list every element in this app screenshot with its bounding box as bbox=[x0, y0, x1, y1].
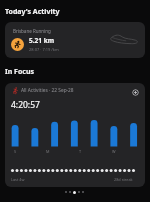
staticText: 5.21 km bbox=[29, 36, 55, 45]
staticText: 28:07 · 7:19 /km bbox=[29, 47, 59, 52]
staticText: 28d streak bbox=[114, 177, 133, 182]
staticText: S bbox=[14, 149, 17, 154]
staticText: M bbox=[46, 149, 50, 154]
staticText: W bbox=[112, 149, 116, 154]
button[interactable]: Add activity bbox=[132, 89, 139, 96]
staticText: Today's Activity bbox=[5, 7, 60, 17]
staticText: T bbox=[79, 149, 82, 154]
staticText: Brisbane Running bbox=[13, 28, 51, 34]
staticText: 4:20:57 bbox=[11, 99, 40, 111]
staticText: Last 4w bbox=[11, 177, 25, 182]
staticText: All Activities · 22 Sep-28 bbox=[21, 87, 74, 94]
staticText: In Focus bbox=[5, 67, 34, 77]
button[interactable]: Brisbane Running bbox=[5, 22, 145, 58]
